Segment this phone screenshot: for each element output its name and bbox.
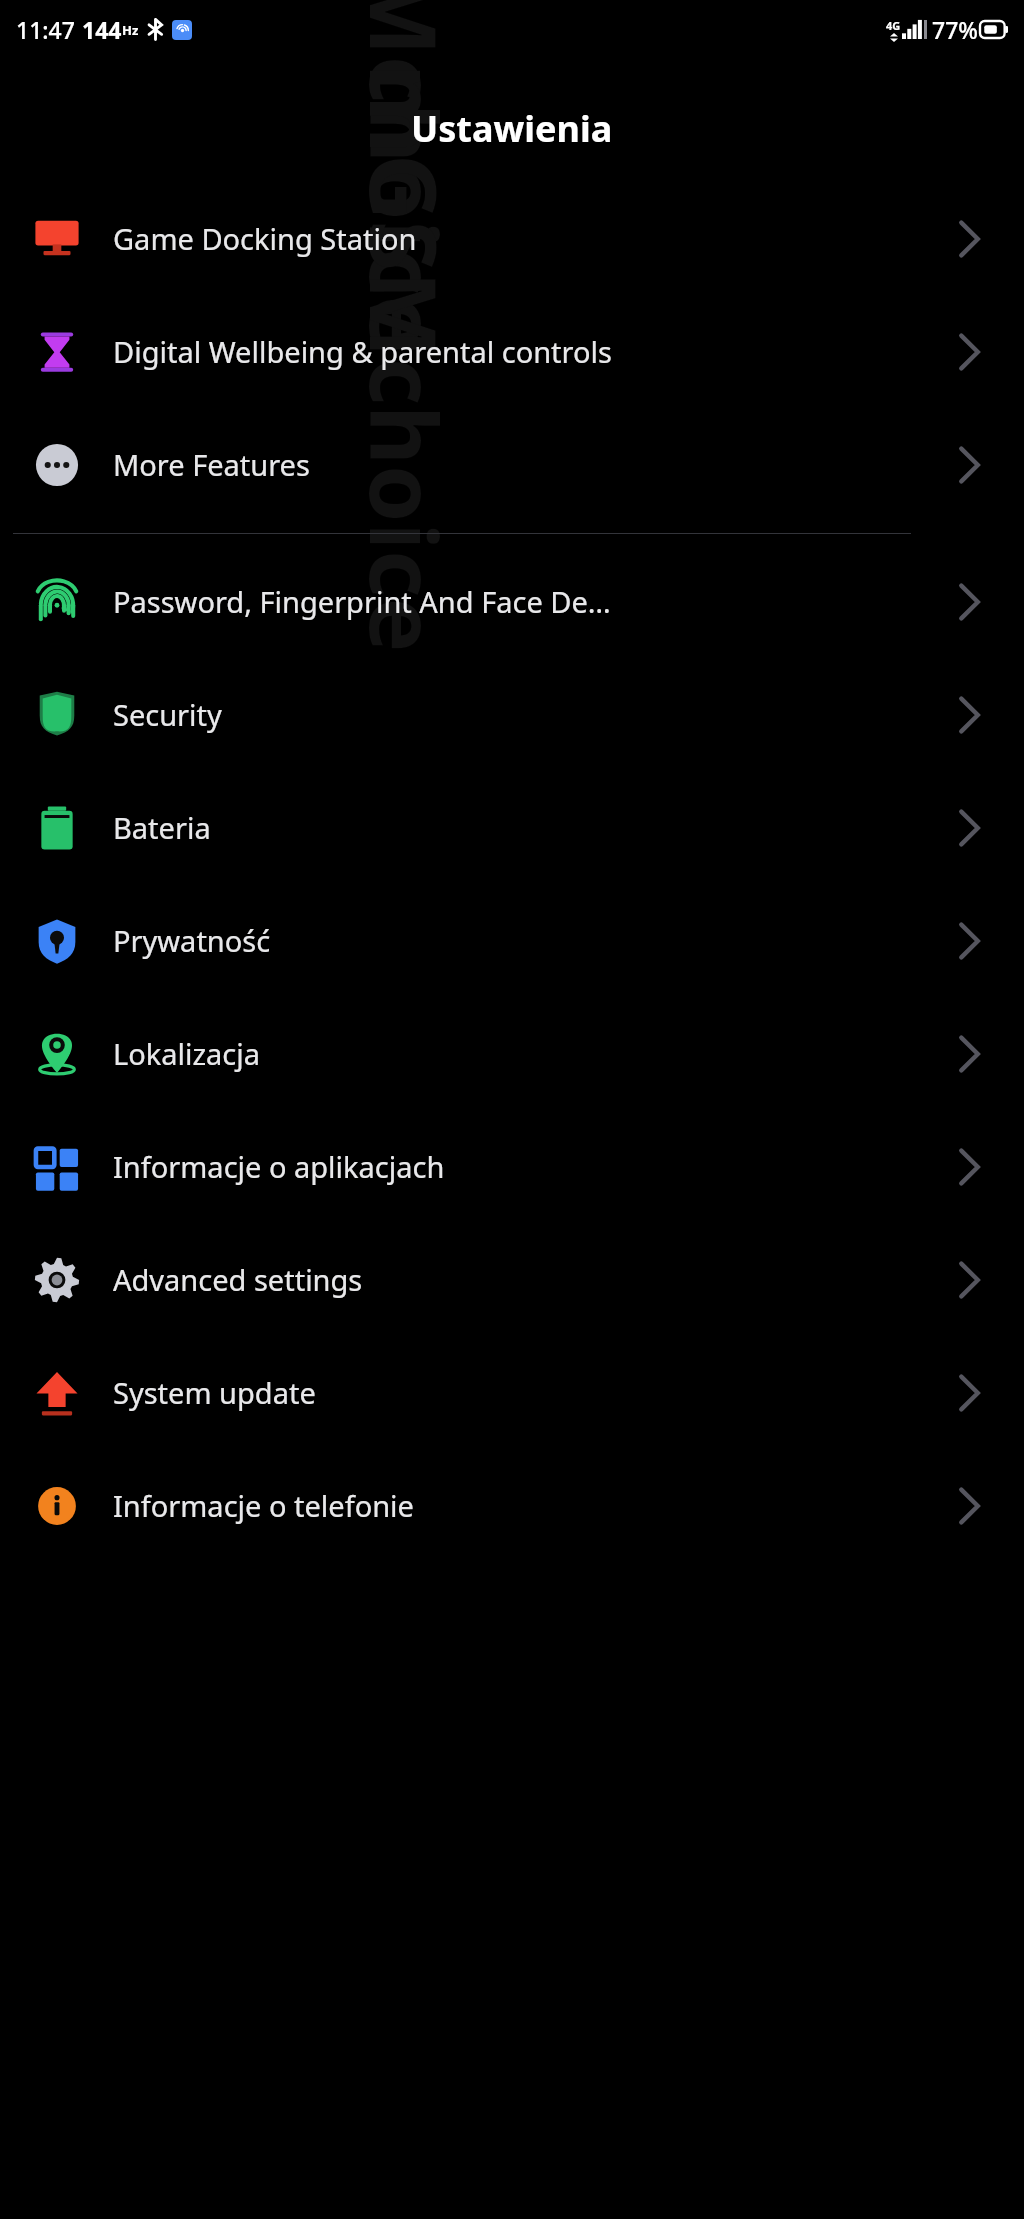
staticText: Bateria [113,808,914,847]
staticText: mGSMchoice [343,0,468,351]
button[interactable]: Informacje o telefonie [0,1449,1024,1562]
button[interactable]: Bateria [0,771,1024,884]
staticText: Informacje o aplikacjach [113,1147,914,1186]
staticText: Security [113,695,914,734]
staticText: Informacje o telefonie [113,1486,914,1525]
staticText: 11:47 [16,14,75,45]
staticText: 77% [932,14,978,45]
staticText: More Features [113,445,914,484]
button[interactable]: Advanced settings [0,1223,1024,1336]
button[interactable]: Lokalizacja [0,997,1024,1110]
button[interactable]: Digital Wellbeing & parental controls [0,295,1024,408]
staticText: Advanced settings [113,1260,914,1299]
staticText: Prywatność [113,921,914,960]
staticText: Digital Wellbeing & parental controls [113,332,914,371]
button[interactable]: Informacje o aplikacjach [0,1110,1024,1223]
button[interactable]: Game Docking Station [0,182,1024,295]
button[interactable]: Security [0,658,1024,771]
staticText: 4G [886,18,901,33]
button[interactable]: Prywatność [0,884,1024,997]
staticText: Game Docking Station [113,219,914,258]
button[interactable]: System update [0,1336,1024,1449]
staticText: Hz [122,21,139,39]
staticText: Ustawienia [411,104,613,153]
staticText: System update [113,1373,914,1412]
staticText: 144 [82,14,122,45]
staticText: Lokalizacja [113,1034,914,1073]
staticText: mGSMchoice [343,64,468,653]
button[interactable]: More Features [0,408,1024,521]
button[interactable]: Password, Fingerprint And Face De… [0,545,1024,658]
staticText: Password, Fingerprint And Face De… [113,582,914,621]
